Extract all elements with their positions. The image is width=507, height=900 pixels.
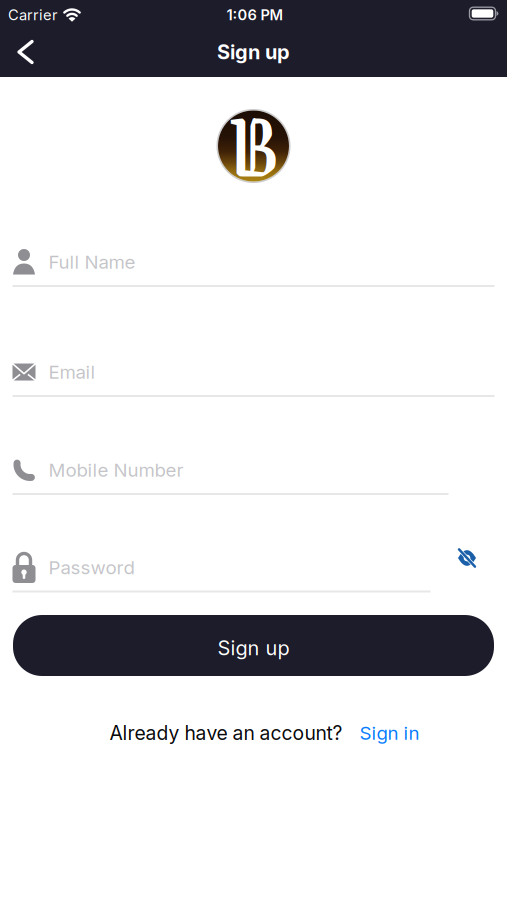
textField[interactable]: Full Name — [12, 249, 494, 289]
staticText: Sign up — [217, 40, 290, 64]
staticText: 1:06 PM — [226, 6, 283, 24]
staticText: Password — [48, 556, 134, 578]
button[interactable]: Back — [9, 31, 42, 72]
staticText: Sign in — [359, 722, 419, 744]
staticText: Email — [48, 361, 95, 383]
staticText: Mobile Number — [48, 459, 183, 481]
button[interactable]: Sign in — [359, 722, 419, 744]
button[interactable]: Show password — [450, 542, 484, 574]
textField[interactable]: Email — [12, 359, 494, 399]
staticText: Sign up — [217, 636, 289, 660]
staticText: Full Name — [48, 251, 135, 273]
button[interactable]: Sign up — [13, 615, 494, 676]
staticText: Carrier — [8, 6, 58, 24]
staticText: B — [228, 74, 279, 212]
textField[interactable]: Password — [12, 554, 494, 594]
textField[interactable]: Mobile Number — [12, 457, 494, 497]
staticText: Already have an account? — [109, 721, 342, 745]
